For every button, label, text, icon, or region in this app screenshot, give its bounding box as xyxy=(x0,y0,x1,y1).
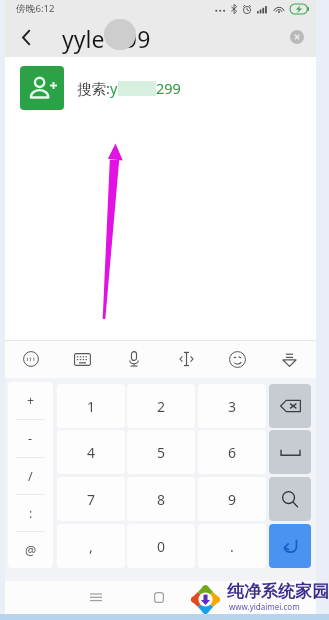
button[interactable]: @ xyxy=(8,532,53,568)
button[interactable]: Back xyxy=(10,21,42,53)
button[interactable]: 2 xyxy=(127,384,195,428)
staticText: 99 xyxy=(124,23,151,54)
button[interactable]: 3 xyxy=(198,384,266,428)
button[interactable]: Backspace xyxy=(269,384,311,428)
button[interactable]: Enter xyxy=(269,524,311,568)
staticText: 纯净系统家园 xyxy=(227,581,329,602)
staticText: / xyxy=(28,468,33,485)
staticText: : xyxy=(29,505,33,522)
button[interactable]: 0 xyxy=(127,524,195,568)
button[interactable]: Recents xyxy=(80,581,112,613)
staticText: 7 xyxy=(87,490,96,509)
staticText: 299 xyxy=(156,78,181,98)
staticText: 0 xyxy=(157,537,166,556)
button[interactable]: + xyxy=(8,382,53,419)
staticText: www.yidaimei.com xyxy=(229,601,300,612)
button[interactable]: / xyxy=(8,458,53,494)
button[interactable]: : xyxy=(8,495,53,531)
button[interactable]: Input method xyxy=(17,345,45,373)
staticText: + xyxy=(27,392,35,409)
staticText: 1 xyxy=(87,397,96,416)
button[interactable]: 搜索: xyxy=(5,61,316,114)
button[interactable]: Search xyxy=(269,477,311,521)
staticText: yyle xyxy=(62,23,105,54)
staticText: 5 xyxy=(157,443,166,462)
staticText: 搜索: xyxy=(77,78,110,98)
staticText: @ xyxy=(25,542,37,559)
staticText: 8 xyxy=(157,490,166,509)
staticText: 4 xyxy=(87,443,96,462)
staticText: 6 xyxy=(228,443,237,462)
staticText: , xyxy=(89,537,93,556)
staticText: . xyxy=(230,537,234,556)
staticText: 2 xyxy=(157,397,166,416)
staticText: 3 xyxy=(228,397,237,416)
button[interactable]: 4 xyxy=(57,430,125,474)
button[interactable]: 8 xyxy=(127,477,195,521)
button[interactable]: Emoji xyxy=(223,345,251,373)
button[interactable]: 7 xyxy=(57,477,125,521)
button[interactable]: Keyboard xyxy=(68,345,96,373)
button[interactable]: - xyxy=(8,420,53,457)
staticText: 傍晚6:12 xyxy=(16,2,55,15)
button[interactable]: 1 xyxy=(57,384,125,428)
button[interactable]: , xyxy=(57,524,125,568)
button[interactable]: Clear xyxy=(283,23,311,51)
staticText: 9 xyxy=(228,490,237,509)
button[interactable]: Cursor xyxy=(172,345,200,373)
button[interactable]: 9 xyxy=(198,477,266,521)
button[interactable]: Voice input xyxy=(120,345,148,373)
button[interactable]: Home xyxy=(143,581,175,613)
button[interactable]: Space xyxy=(269,430,311,474)
button[interactable]: 6 xyxy=(198,430,266,474)
staticText: y xyxy=(110,78,118,98)
staticText: - xyxy=(28,430,33,447)
button[interactable]: Hide keyboard xyxy=(275,345,303,373)
button[interactable]: . xyxy=(198,524,266,568)
button[interactable]: 5 xyxy=(127,430,195,474)
